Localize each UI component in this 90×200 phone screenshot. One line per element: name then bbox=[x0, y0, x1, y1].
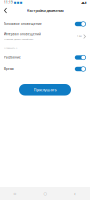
staticText: Описание данного интерфейса bbox=[4, 38, 33, 41]
staticText: ▫ bbox=[13, 191, 16, 196]
staticText: ‹ bbox=[74, 190, 76, 197]
button[interactable]: Расстояние bbox=[0, 52, 90, 63]
button[interactable]: Прослушать bbox=[19, 84, 71, 95]
staticText: Прослушать bbox=[33, 87, 56, 92]
staticText: Расстояние bbox=[4, 55, 21, 59]
button[interactable]: Интервал оповещений bbox=[0, 29, 90, 44]
staticText: ○ bbox=[43, 191, 46, 196]
staticText: ◢◣▮ bbox=[81, 1, 86, 4]
staticText: Время bbox=[4, 67, 14, 71]
staticText: Голосовое оповещение bbox=[4, 22, 42, 26]
staticText: Оповещать о bbox=[4, 46, 17, 49]
staticText: 11:19 bbox=[4, 0, 13, 4]
staticText: Интервал оповещений bbox=[4, 32, 41, 36]
button[interactable]: Home bbox=[30, 191, 60, 196]
button[interactable]: Back bbox=[0, 5, 11, 16]
staticText: 1 км bbox=[77, 35, 82, 38]
staticText: ■■■ bbox=[14, 1, 23, 4]
button[interactable]: Время bbox=[0, 63, 90, 75]
button[interactable]: Recents bbox=[0, 191, 30, 196]
button[interactable]: Back bbox=[60, 190, 90, 197]
staticText: Настройки движения bbox=[26, 8, 63, 13]
button[interactable]: Голосовое оповещение bbox=[0, 19, 90, 29]
